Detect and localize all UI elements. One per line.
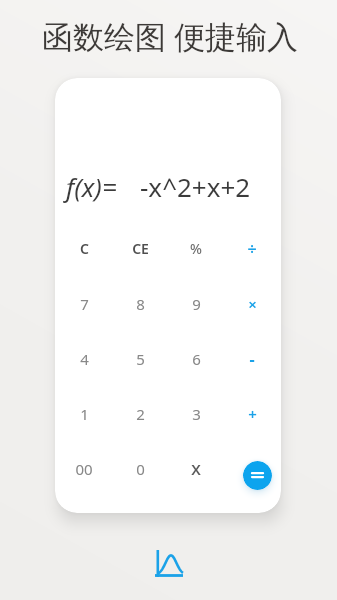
staticText: 6 xyxy=(192,349,201,369)
button[interactable]: 1 xyxy=(56,386,112,441)
button[interactable] xyxy=(243,461,272,490)
staticText: 函数绘图 便捷输入 xyxy=(42,15,299,57)
button[interactable]: 7 xyxy=(56,276,112,331)
button[interactable]: 0 xyxy=(112,441,168,496)
staticText: - xyxy=(249,348,255,370)
staticText: f(x)= xyxy=(66,169,117,204)
button[interactable]: 9 xyxy=(168,276,224,331)
staticText: 8 xyxy=(136,294,145,314)
staticText: 1 xyxy=(80,404,89,424)
staticText: X xyxy=(191,459,201,479)
button[interactable]: - xyxy=(224,331,280,386)
staticText: 2 xyxy=(136,404,145,424)
staticText: 3 xyxy=(192,404,201,424)
button[interactable] xyxy=(155,550,183,577)
button[interactable]: 8 xyxy=(112,276,168,331)
button[interactable]: ÷ xyxy=(224,221,280,276)
button[interactable]: 6 xyxy=(168,331,224,386)
staticText: 9 xyxy=(192,294,201,314)
button[interactable]: 5 xyxy=(112,331,168,386)
staticText: 7 xyxy=(80,294,89,314)
staticText: 4 xyxy=(80,349,89,369)
staticText: % xyxy=(190,239,202,258)
button[interactable]: X xyxy=(168,441,224,496)
staticText: 00 xyxy=(75,459,93,479)
button[interactable]: CE xyxy=(112,221,168,276)
staticText: ÷ xyxy=(247,238,257,260)
button[interactable]: 00 xyxy=(56,441,112,496)
button[interactable]: 4 xyxy=(56,331,112,386)
staticText: CE xyxy=(132,239,149,258)
button[interactable]: 2 xyxy=(112,386,168,441)
button[interactable]: C xyxy=(56,221,112,276)
button[interactable]: 3 xyxy=(168,386,224,441)
staticText: + xyxy=(248,404,257,424)
staticText: 0 xyxy=(136,459,145,479)
staticText: × xyxy=(248,294,257,314)
button[interactable]: % xyxy=(168,221,224,276)
staticText: -x^2+x+2 xyxy=(140,169,251,204)
button[interactable]: × xyxy=(224,276,280,331)
staticText: 5 xyxy=(136,349,145,369)
staticText: C xyxy=(80,239,89,258)
button[interactable]: + xyxy=(224,386,280,441)
